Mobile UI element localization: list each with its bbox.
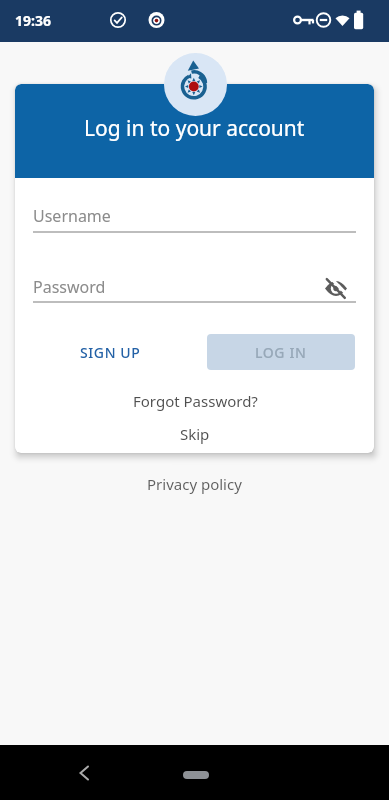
button[interactable]: Username bbox=[33, 199, 356, 235]
button[interactable]: Forgot Password? bbox=[105, 387, 285, 415]
button[interactable]: Skip bbox=[145, 420, 245, 448]
staticText: Skip bbox=[180, 424, 210, 444]
button[interactable] bbox=[66, 755, 102, 791]
button[interactable]: Password bbox=[33, 270, 356, 306]
staticText: Username bbox=[33, 205, 111, 227]
button[interactable]: LOG IN bbox=[207, 334, 355, 370]
button[interactable]: SIGN UP bbox=[60, 334, 160, 370]
staticText: Password bbox=[33, 276, 106, 298]
staticText: LOG IN bbox=[255, 343, 307, 362]
staticText: 19:36 bbox=[15, 11, 51, 30]
button[interactable] bbox=[318, 270, 354, 306]
button[interactable] bbox=[183, 771, 209, 779]
button[interactable]: Privacy policy bbox=[114, 472, 274, 496]
staticText: Log in to your account bbox=[84, 114, 305, 143]
staticText: Forgot Password? bbox=[133, 391, 258, 411]
staticText: Privacy policy bbox=[147, 474, 242, 494]
staticText: SIGN UP bbox=[80, 343, 141, 362]
